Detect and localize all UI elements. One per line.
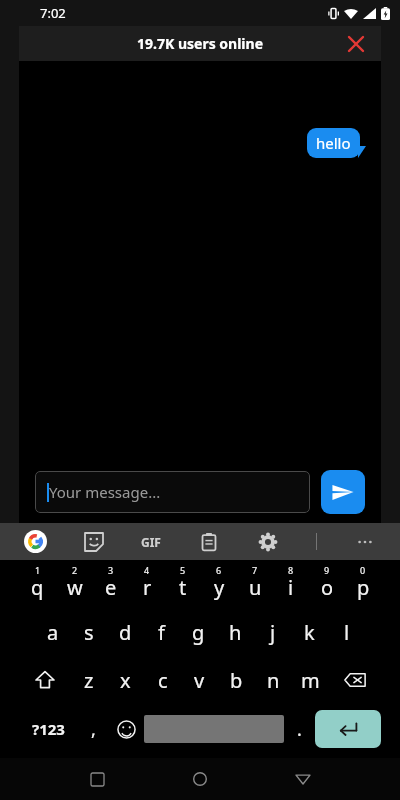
button[interactable]: d [107,608,143,656]
staticText: z [84,667,94,694]
button[interactable]: Recents [77,759,117,799]
button[interactable]: 9 [309,560,345,608]
button[interactable]: Close [343,31,369,57]
staticText: 19.7K users online [137,34,263,53]
button[interactable]: Shift [19,656,70,704]
button[interactable]: ?123 [19,704,78,754]
staticText: j [270,619,276,646]
staticText: GIF [141,534,161,550]
staticText: 2 [72,564,78,576]
button[interactable]: j [254,608,291,656]
staticText: a [47,619,59,646]
button[interactable]: 3 [93,560,129,608]
button[interactable]: Your message... [35,471,310,513]
staticText: q [31,574,44,601]
button[interactable]: h [217,608,254,656]
staticText: Your message... [49,482,161,502]
button[interactable]: m [292,656,329,704]
staticText: p [357,574,370,601]
staticText: c [158,667,168,694]
button[interactable]: a [35,608,71,656]
staticText: i [288,574,294,601]
button[interactable]: z [70,656,107,704]
staticText: hello [316,133,351,153]
staticText: h [229,619,242,646]
button[interactable]: x [107,656,144,704]
button[interactable]: GIF [141,534,161,550]
staticText: r [143,574,152,601]
button[interactable]: Settings [257,531,279,553]
staticText: 3 [108,564,114,576]
button[interactable]: g [180,608,217,656]
staticText: d [119,619,132,646]
button[interactable]: 0 [345,560,381,608]
staticText: 0 [360,564,366,576]
button[interactable]: 6 [201,560,237,608]
staticText: y [214,574,225,601]
button[interactable]: Back [283,759,323,799]
staticText: f [158,619,165,646]
staticText: x [120,667,131,694]
button[interactable]: v [181,656,218,704]
button[interactable]: Google [24,530,47,553]
button[interactable]: 1 [19,560,56,608]
staticText: 7:02 [40,4,66,22]
staticText: e [105,574,117,601]
button[interactable]: b [218,656,255,704]
button[interactable]: . [284,704,315,754]
staticText: , [91,717,96,742]
button[interactable]: hello [307,128,360,158]
button[interactable]: Enter [315,710,381,748]
button[interactable]: 7 [237,560,273,608]
staticText: 5 [180,564,186,576]
staticText: n [267,667,280,694]
button[interactable]: s [71,608,107,656]
button[interactable]: Clipboard [198,531,220,553]
button[interactable]: c [144,656,181,704]
button[interactable]: k [291,608,328,656]
staticText: 6 [216,564,222,576]
staticText: ?123 [32,719,65,739]
button[interactable]: f [143,608,180,656]
staticText: o [321,574,334,601]
staticText: w [67,574,83,601]
button[interactable]: 4 [129,560,165,608]
staticText: u [249,574,262,601]
staticText: 7 [252,564,258,576]
staticText: b [230,667,243,694]
button[interactable]: 5 [165,560,201,608]
staticText: 9 [324,564,330,576]
button[interactable]: Send [321,470,365,514]
button[interactable]: l [328,608,365,656]
button[interactable]: 2 [56,560,93,608]
button[interactable]: n [255,656,292,704]
staticText: t [179,574,187,601]
staticText: 4 [144,564,150,576]
staticText: . [297,717,302,742]
staticText: g [192,619,205,646]
button[interactable]: More options [354,531,376,553]
staticText: m [301,667,320,694]
staticText: k [304,619,315,646]
button[interactable]: Emoji [109,704,144,754]
button[interactable]: Home [180,759,220,799]
button[interactable]: , [78,704,109,754]
button[interactable]: Stickers [83,531,105,553]
staticText: s [84,619,94,646]
button[interactable]: 8 [273,560,309,608]
button[interactable]: Backspace [329,656,381,704]
staticText: v [194,667,205,694]
staticText: 1 [35,564,41,576]
staticText: l [344,619,350,646]
staticText: 8 [288,564,294,576]
